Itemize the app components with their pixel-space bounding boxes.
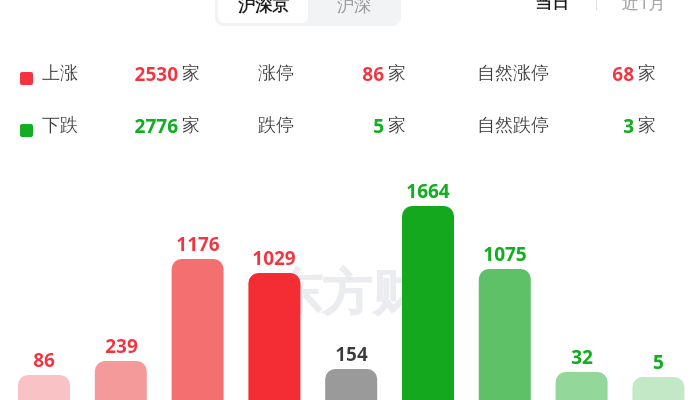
staticText: 近1月 — [622, 0, 666, 14]
staticText: 家 — [182, 62, 200, 85]
staticText: 家 — [638, 62, 656, 85]
button[interactable]: 沪深 — [310, 0, 398, 23]
staticText: 家 — [182, 114, 200, 137]
staticText: 5 — [653, 349, 664, 375]
staticText: 自然涨停 — [477, 62, 549, 85]
staticText: 沪深 — [337, 0, 371, 16]
staticText: 涨停 — [258, 62, 294, 85]
button[interactable]: 涨跌分布柱状图 — [0, 160, 700, 400]
button[interactable]: 沪深京 — [218, 0, 308, 23]
staticText: 下跌 — [42, 114, 78, 137]
staticText: 家 — [388, 114, 406, 137]
button[interactable]: 当日 — [512, 0, 592, 18]
staticText: 1029 — [252, 245, 296, 271]
staticText: 自然跌停 — [477, 114, 549, 137]
button[interactable]: 近1月 — [604, 0, 684, 18]
staticText: 1664 — [406, 178, 450, 204]
staticText: 3 — [623, 113, 634, 139]
staticText: 1176 — [176, 231, 220, 257]
staticText: 跌停 — [258, 114, 294, 137]
staticText: 东方财 — [272, 262, 422, 325]
staticText: 家 — [638, 114, 656, 137]
staticText: 2530 — [134, 61, 178, 87]
staticText: 2776 — [134, 113, 178, 139]
staticText: 154 — [335, 341, 368, 367]
staticText: 86 — [33, 347, 55, 373]
staticText: 上涨 — [42, 62, 78, 85]
staticText: 1075 — [483, 241, 527, 267]
staticText: 当日 — [535, 0, 569, 13]
staticText: 5 — [373, 113, 384, 139]
staticText: 沪深京 — [238, 0, 289, 16]
staticText: 家 — [388, 62, 406, 85]
staticText: 239 — [105, 333, 138, 359]
staticText: 32 — [571, 344, 593, 370]
staticText: 86 — [362, 61, 384, 87]
staticText: 68 — [612, 61, 634, 87]
